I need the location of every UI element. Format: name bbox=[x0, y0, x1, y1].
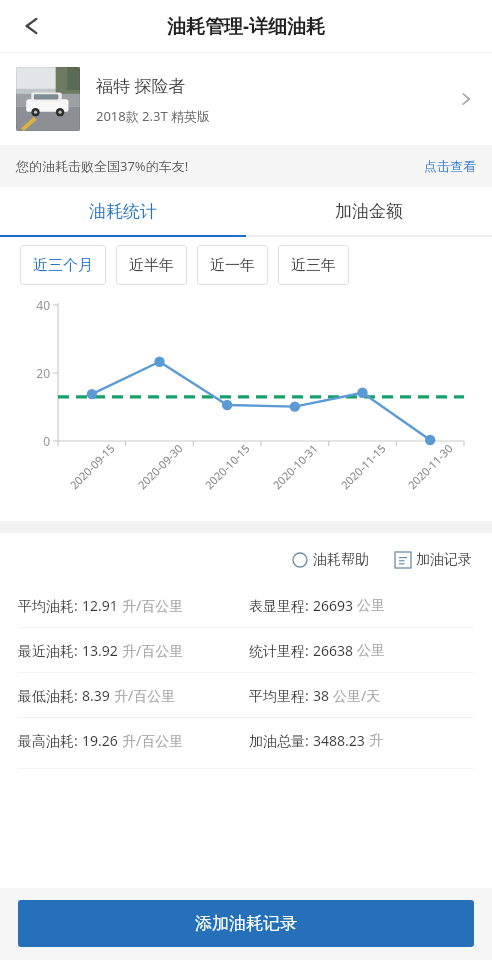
staticText: 油耗管理-详细油耗 bbox=[167, 13, 326, 39]
staticText: 油耗统计 bbox=[89, 201, 157, 222]
staticText: 油耗帮助 bbox=[313, 551, 369, 569]
staticText: 升/百公里 bbox=[122, 731, 184, 750]
staticText: 2020-10-15 bbox=[188, 427, 266, 506]
staticText: 近一年 bbox=[210, 256, 255, 275]
staticText: 您的油耗击败全国37%的车友! bbox=[16, 157, 424, 175]
button[interactable]: 添加油耗记录 bbox=[18, 900, 474, 947]
button[interactable]: 加油记录 bbox=[391, 547, 476, 573]
button[interactable]: 油耗统计 bbox=[0, 187, 246, 235]
button[interactable]: Back bbox=[10, 4, 54, 48]
button[interactable]: 近三个月 bbox=[20, 245, 106, 285]
button[interactable]: 近三年 bbox=[278, 245, 349, 285]
staticText: 2020-11-30 bbox=[391, 427, 469, 506]
staticText: 统计里程: bbox=[249, 641, 313, 660]
staticText: 26638 bbox=[313, 641, 357, 660]
staticText: 加油记录 bbox=[416, 551, 472, 569]
staticText: 13.92 bbox=[82, 641, 122, 660]
staticText: 近半年 bbox=[129, 256, 174, 275]
staticText: 最低油耗: bbox=[18, 686, 82, 705]
staticText: 加油总量: bbox=[249, 731, 313, 750]
staticText: 近三年 bbox=[291, 256, 336, 275]
staticText: 公里 bbox=[357, 597, 385, 615]
staticText: 26693 bbox=[313, 596, 357, 615]
staticText: 2020-09-30 bbox=[121, 427, 199, 506]
button[interactable]: 近半年 bbox=[116, 245, 187, 285]
staticText: 平均油耗: bbox=[18, 596, 82, 615]
staticText: 2020-11-15 bbox=[324, 427, 402, 506]
staticText: 8.39 bbox=[82, 686, 114, 705]
staticText: 2020-09-15 bbox=[53, 427, 131, 506]
staticText: 点击查看 bbox=[424, 158, 476, 174]
staticText: 38 bbox=[313, 686, 333, 705]
button[interactable]: 加油金额 bbox=[246, 187, 492, 235]
staticText: 近三个月 bbox=[33, 256, 93, 275]
staticText: 升/百公里 bbox=[122, 596, 184, 615]
staticText: 0 bbox=[0, 433, 50, 449]
staticText: 最高油耗: bbox=[18, 731, 82, 750]
staticText: 2020-10-31 bbox=[256, 427, 334, 506]
staticText: 升 bbox=[369, 732, 383, 750]
staticText: 添加油耗记录 bbox=[195, 913, 297, 934]
staticText: 3488.23 bbox=[313, 731, 369, 750]
button[interactable]: 油耗帮助 bbox=[288, 547, 373, 573]
staticText: 表显里程: bbox=[249, 596, 313, 615]
staticText: 2018款 2.3T 精英版 bbox=[96, 107, 211, 125]
staticText: 平均里程: bbox=[249, 686, 313, 705]
staticText: 最近油耗: bbox=[18, 641, 82, 660]
staticText: 福特 探险者 bbox=[96, 74, 186, 97]
staticText: 19.26 bbox=[82, 731, 122, 750]
staticText: 公里/天 bbox=[333, 686, 381, 705]
button[interactable]: 近一年 bbox=[197, 245, 268, 285]
button[interactable]: 您的油耗击败全国37%的车友! bbox=[0, 145, 492, 187]
staticText: 加油金额 bbox=[335, 201, 403, 222]
staticText: 20 bbox=[0, 365, 50, 381]
staticText: 12.91 bbox=[82, 596, 122, 615]
button[interactable]: 福特 探险者 bbox=[0, 53, 492, 145]
staticText: 升/百公里 bbox=[114, 686, 176, 705]
staticText: 升/百公里 bbox=[122, 641, 184, 660]
staticText: 40 bbox=[0, 297, 50, 313]
staticText: 公里 bbox=[357, 642, 385, 660]
